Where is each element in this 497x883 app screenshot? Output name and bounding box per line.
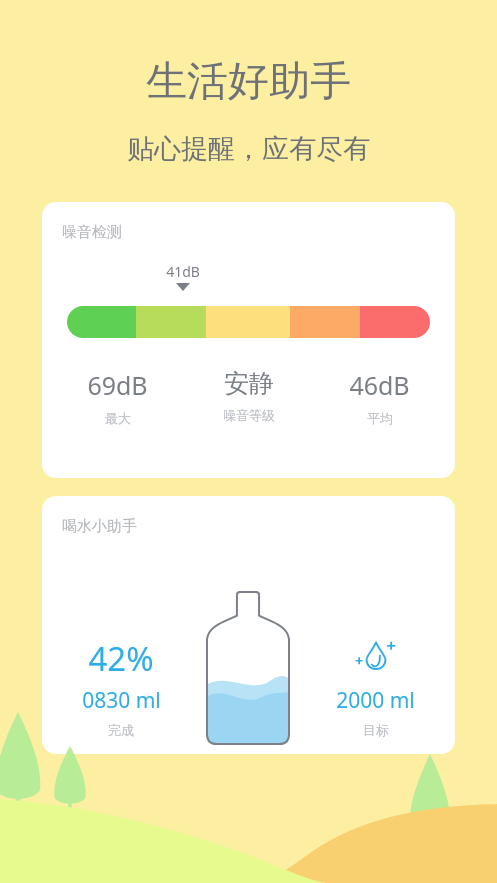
staticText: 贴心提醒，应有尽有 xyxy=(0,132,497,166)
staticText: 69dB xyxy=(87,368,148,402)
staticText: 41dB xyxy=(166,262,200,281)
staticText: 生活好助手 xyxy=(0,56,497,108)
staticText: 目标 xyxy=(363,722,389,738)
staticText: 安静 xyxy=(224,368,274,399)
staticText: 噪音等级 xyxy=(223,407,275,423)
other: Water goal xyxy=(354,634,398,678)
staticText: 噪音检测 xyxy=(62,223,122,242)
staticText: 完成 xyxy=(108,722,134,738)
staticText: 平均 xyxy=(367,410,393,426)
staticText: 喝水小助手 xyxy=(62,517,137,536)
staticText: 46dB xyxy=(349,368,410,402)
staticText: 42% xyxy=(88,636,154,681)
button[interactable]: 喝水小助手 xyxy=(42,496,455,754)
staticText: 0830 ml xyxy=(82,686,161,715)
button[interactable]: 噪音检测 xyxy=(42,202,455,478)
staticText: 最大 xyxy=(105,410,131,426)
staticText: 2000 ml xyxy=(336,686,415,715)
